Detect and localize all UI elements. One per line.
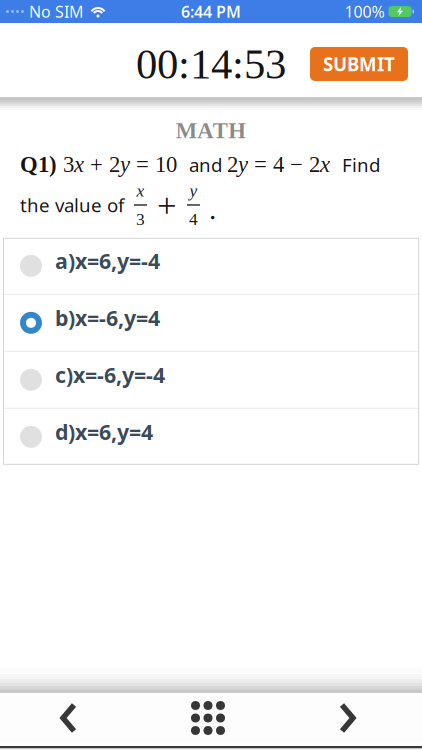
staticText: c)x=-6,y=-4	[55, 361, 165, 389]
button[interactable]: a)x=6,y=-4	[3, 238, 419, 294]
staticText: 4	[189, 210, 198, 229]
staticText: a)x=6,y=-4	[55, 247, 160, 275]
button[interactable]: c)x=-6,y=-4	[3, 352, 419, 408]
button[interactable]	[48, 695, 89, 740]
button[interactable]	[181, 694, 235, 742]
staticText: b)x=-6,y=4	[55, 304, 160, 332]
staticText: 3	[136, 210, 145, 229]
button[interactable]	[327, 695, 368, 740]
staticText: y	[189, 181, 197, 200]
staticText: 00:14:53	[136, 40, 286, 88]
staticText: MATH	[176, 118, 246, 143]
staticText: 6:44 PM	[181, 1, 241, 22]
staticText: d)x=6,y=4	[55, 418, 153, 446]
staticText: x	[136, 181, 144, 200]
button[interactable]: SUBMIT	[310, 47, 408, 81]
button[interactable]: b)x=-6,y=4	[3, 295, 419, 351]
staticText: 100%	[344, 1, 384, 22]
staticText: the value of	[20, 193, 124, 217]
staticText: Q1) 3x + 2y = 10 and 2y = 4 − 2x Find	[20, 152, 380, 177]
staticText: +	[157, 186, 177, 224]
staticText: SUBMIT	[323, 52, 395, 76]
button[interactable]: d)x=6,y=4	[3, 409, 419, 465]
staticText: .	[210, 200, 215, 224]
staticText: No SIM	[29, 1, 84, 22]
